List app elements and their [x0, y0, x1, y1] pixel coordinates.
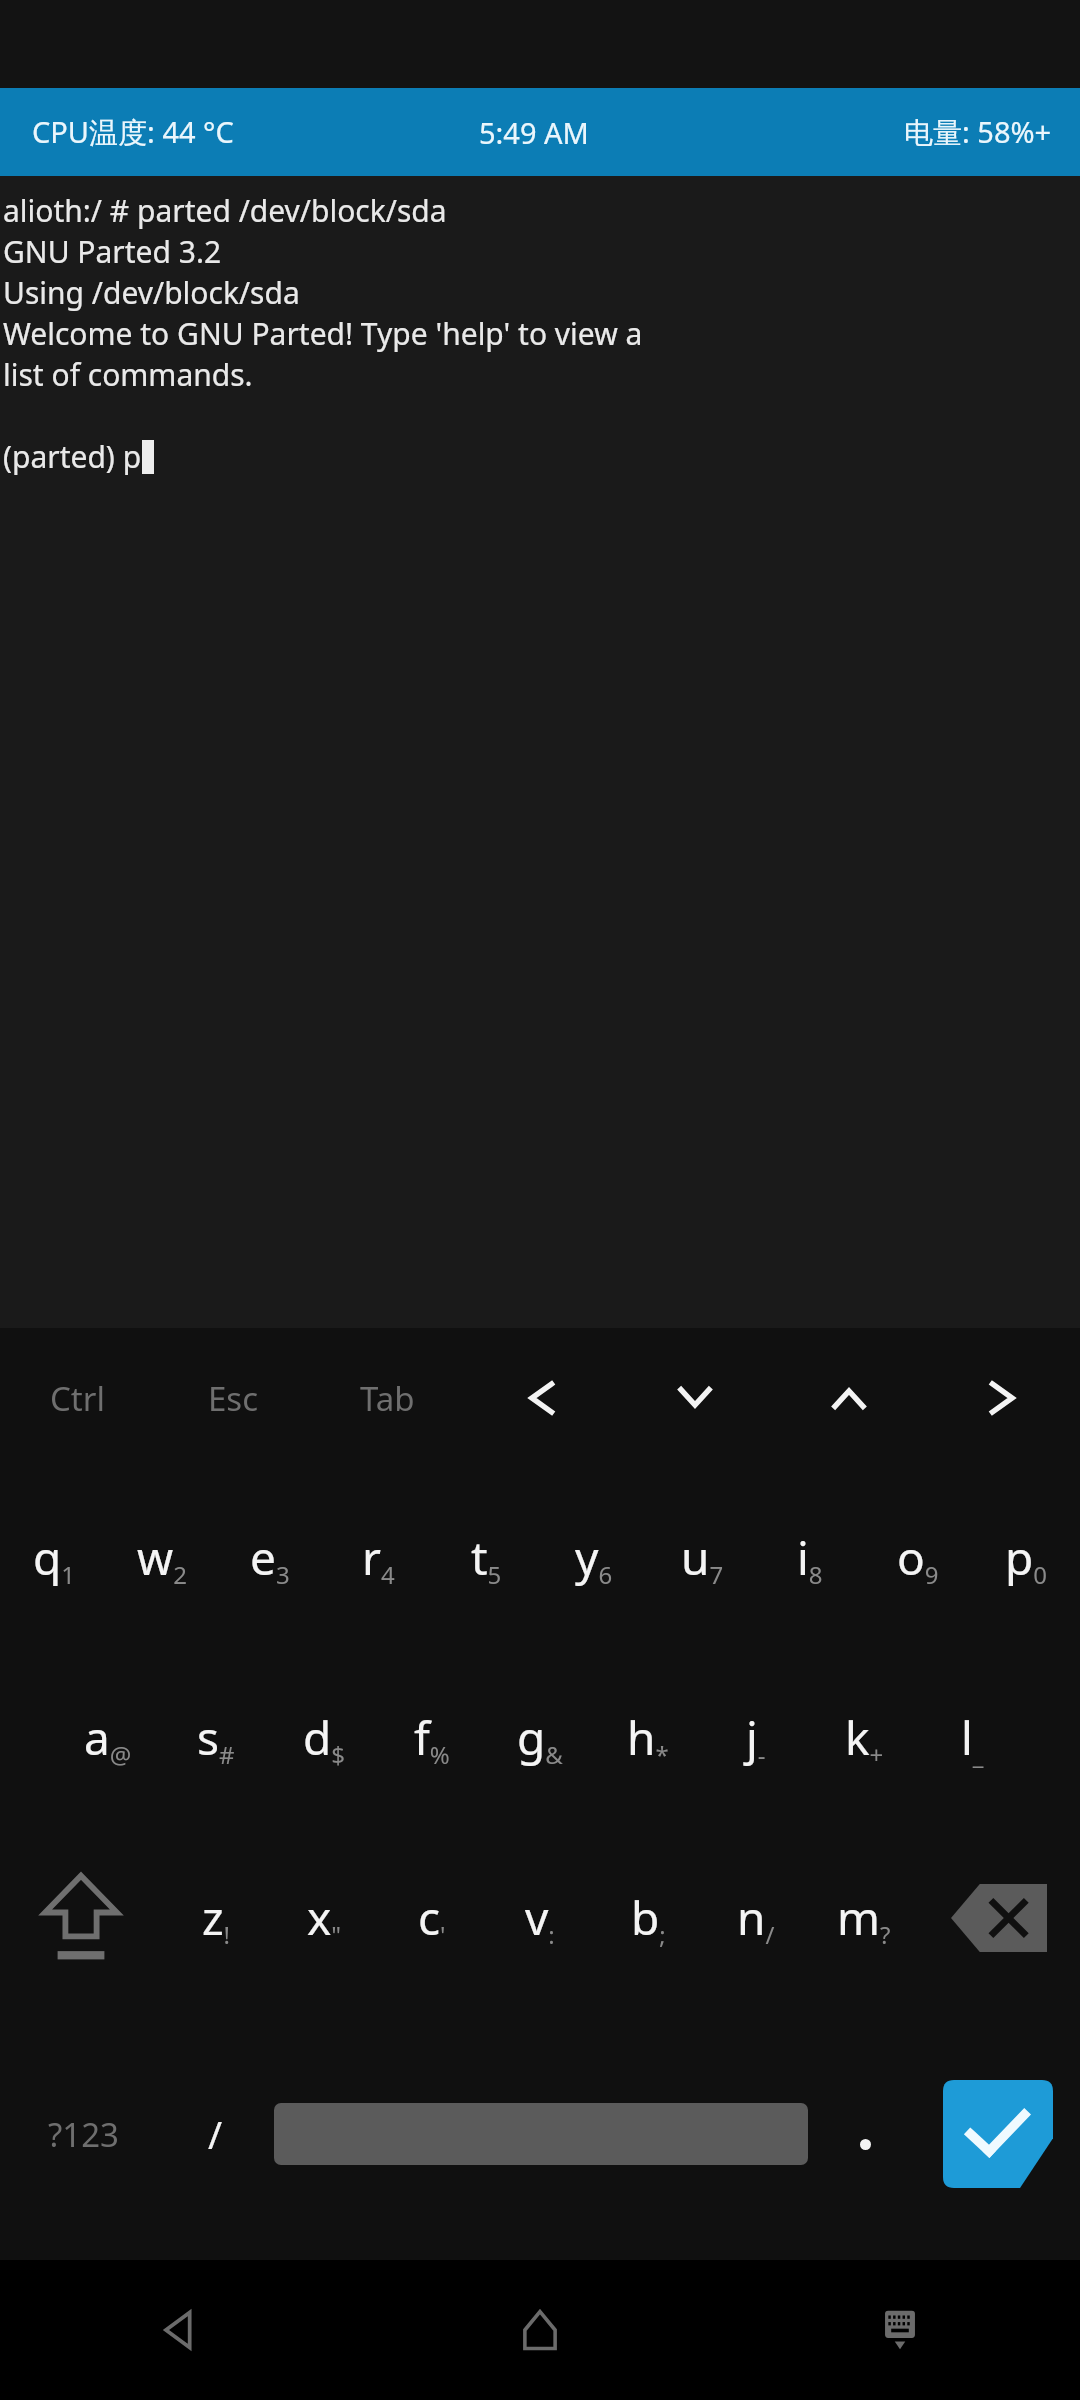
button[interactable]: p0	[972, 1468, 1080, 1648]
button[interactable]	[816, 2008, 915, 2260]
button[interactable]: c'	[378, 1828, 486, 2008]
staticText: r4	[362, 1526, 395, 1591]
staticText: y6	[575, 1526, 613, 1591]
staticText: 5:49 AM	[479, 113, 589, 152]
button[interactable]: /	[166, 2008, 265, 2260]
button[interactable]: x"	[270, 1828, 378, 2008]
button[interactable]: r4	[324, 1468, 432, 1648]
button[interactable]: f%	[378, 1648, 486, 1828]
button[interactable]: q1	[0, 1468, 108, 1648]
button[interactable]: CPU温度: 44 °C	[0, 88, 1080, 176]
button[interactable]: w2	[108, 1468, 216, 1648]
button[interactable]: d$	[270, 1648, 378, 1828]
staticText: c'	[418, 1886, 446, 1951]
staticText: m?	[837, 1886, 891, 1951]
button[interactable]: alioth:/ # parted /dev/block/sda	[0, 176, 1080, 1328]
staticText: l_	[961, 1706, 984, 1771]
staticText: k+	[845, 1706, 884, 1771]
button[interactable]: Down	[618, 1328, 772, 1468]
button[interactable]: Shift	[0, 1828, 162, 2008]
button[interactable]: Ctrl	[0, 1328, 155, 1468]
staticText: h*	[627, 1706, 669, 1771]
staticText: /	[208, 2108, 223, 2160]
button[interactable]: ?123	[0, 2008, 166, 2260]
button[interactable]: m?	[810, 1828, 918, 2008]
button[interactable]: Left	[464, 1328, 618, 1468]
button[interactable]: v:	[486, 1828, 594, 2008]
button[interactable]: o9	[864, 1468, 972, 1648]
staticText: e3	[250, 1526, 290, 1591]
staticText: f%	[414, 1706, 450, 1771]
staticText: 电量: 58%+	[904, 112, 1052, 152]
button[interactable]: Enter	[915, 2008, 1080, 2260]
staticText: list of commands.	[3, 354, 253, 395]
staticText: z!	[202, 1886, 231, 1951]
button[interactable]: Tab	[310, 1328, 464, 1468]
button[interactable]: Up	[772, 1328, 926, 1468]
staticText: j-	[746, 1706, 766, 1771]
staticText: Esc	[208, 1376, 258, 1421]
staticText: s#	[197, 1706, 235, 1771]
button[interactable]: Esc	[155, 1328, 310, 1468]
staticText: Using /dev/block/sda	[3, 272, 300, 313]
button[interactable]: b;	[594, 1828, 702, 2008]
button[interactable]: n/	[702, 1828, 810, 2008]
button[interactable]: t5	[432, 1468, 540, 1648]
button[interactable]: u7	[648, 1468, 756, 1648]
staticText: b;	[631, 1886, 666, 1951]
button[interactable]: j-	[702, 1648, 810, 1828]
staticText: x"	[307, 1886, 342, 1951]
button[interactable]: k+	[810, 1648, 918, 1828]
button[interactable]: h*	[594, 1648, 702, 1828]
button[interactable]: Home	[360, 2260, 720, 2400]
staticText: g&	[517, 1706, 563, 1771]
staticText: u7	[681, 1526, 724, 1591]
staticText: q1	[33, 1526, 76, 1591]
staticText: n/	[737, 1886, 775, 1951]
button[interactable]: y6	[540, 1468, 648, 1648]
staticText: (parted) p	[3, 436, 142, 477]
button[interactable]: i8	[756, 1468, 864, 1648]
staticText: d$	[303, 1706, 346, 1771]
staticText: v:	[525, 1886, 555, 1951]
staticText: alioth:/ # parted /dev/block/sda	[3, 190, 447, 231]
staticText: o9	[897, 1526, 939, 1591]
button[interactable]: g&	[486, 1648, 594, 1828]
staticText: Ctrl	[50, 1376, 105, 1421]
button[interactable]: a@	[54, 1648, 162, 1828]
staticText: GNU Parted 3.2	[3, 231, 222, 272]
button[interactable]: Right	[926, 1328, 1080, 1468]
button[interactable]: z!	[162, 1828, 270, 2008]
button[interactable]: s#	[162, 1648, 270, 1828]
button[interactable]: Backspace	[918, 1828, 1080, 2008]
staticText: Tab	[360, 1376, 415, 1421]
button[interactable]: l_	[918, 1648, 1026, 1828]
staticText: w2	[137, 1526, 187, 1591]
staticText: t5	[471, 1526, 502, 1591]
button[interactable]: Space	[265, 2008, 816, 2260]
staticText: i8	[797, 1526, 823, 1591]
staticText: CPU温度: 44 °C	[32, 112, 234, 152]
staticText: a@	[84, 1706, 132, 1771]
staticText: Welcome to GNU Parted! Type 'help' to vi…	[3, 313, 643, 354]
staticText: p0	[1005, 1526, 1048, 1591]
button[interactable]: Hide keyboard	[720, 2260, 1080, 2400]
staticText: ?123	[48, 2112, 119, 2157]
button[interactable]: e3	[216, 1468, 324, 1648]
button[interactable]: Back	[0, 2260, 360, 2400]
